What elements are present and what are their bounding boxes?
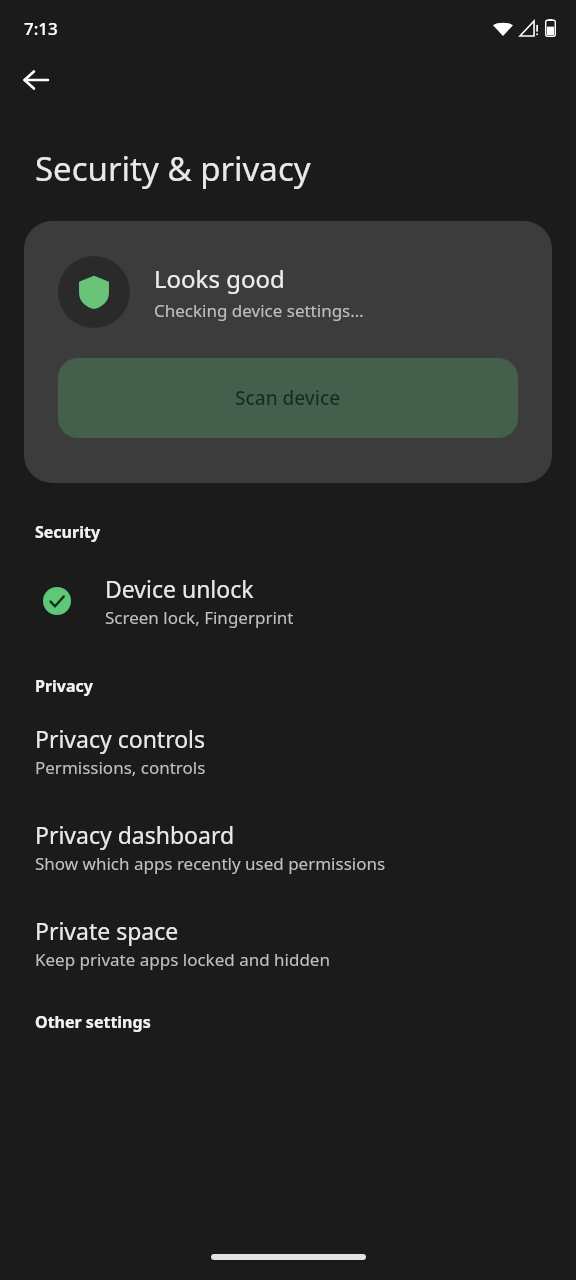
- staticText: Other settings: [35, 1011, 151, 1033]
- button[interactable]: Private space: [0, 913, 576, 973]
- staticText: Security & privacy: [35, 146, 311, 191]
- staticText: Security: [35, 521, 101, 543]
- staticText: Private space: [35, 915, 179, 946]
- staticText: Show which apps recently used permission…: [35, 852, 386, 875]
- staticText: Privacy controls: [35, 723, 206, 754]
- button[interactable]: Back: [12, 56, 60, 104]
- staticText: Privacy: [35, 675, 93, 697]
- staticText: Privacy dashboard: [35, 819, 235, 850]
- staticText: Looks good: [154, 262, 285, 295]
- staticText: Screen lock, Fingerprint: [105, 606, 294, 629]
- button[interactable]: Device unlock: [0, 567, 576, 635]
- button[interactable]: Scan device: [58, 358, 518, 438]
- staticText: 7:13: [24, 17, 58, 40]
- staticText: Device unlock: [105, 573, 254, 604]
- staticText: Permissions, controls: [35, 756, 206, 779]
- button[interactable]: Privacy dashboard: [0, 817, 576, 877]
- staticText: Scan device: [235, 385, 341, 411]
- staticText: Checking device settings…: [154, 299, 364, 322]
- button[interactable]: Privacy controls: [0, 721, 576, 781]
- staticText: Keep private apps locked and hidden: [35, 948, 330, 971]
